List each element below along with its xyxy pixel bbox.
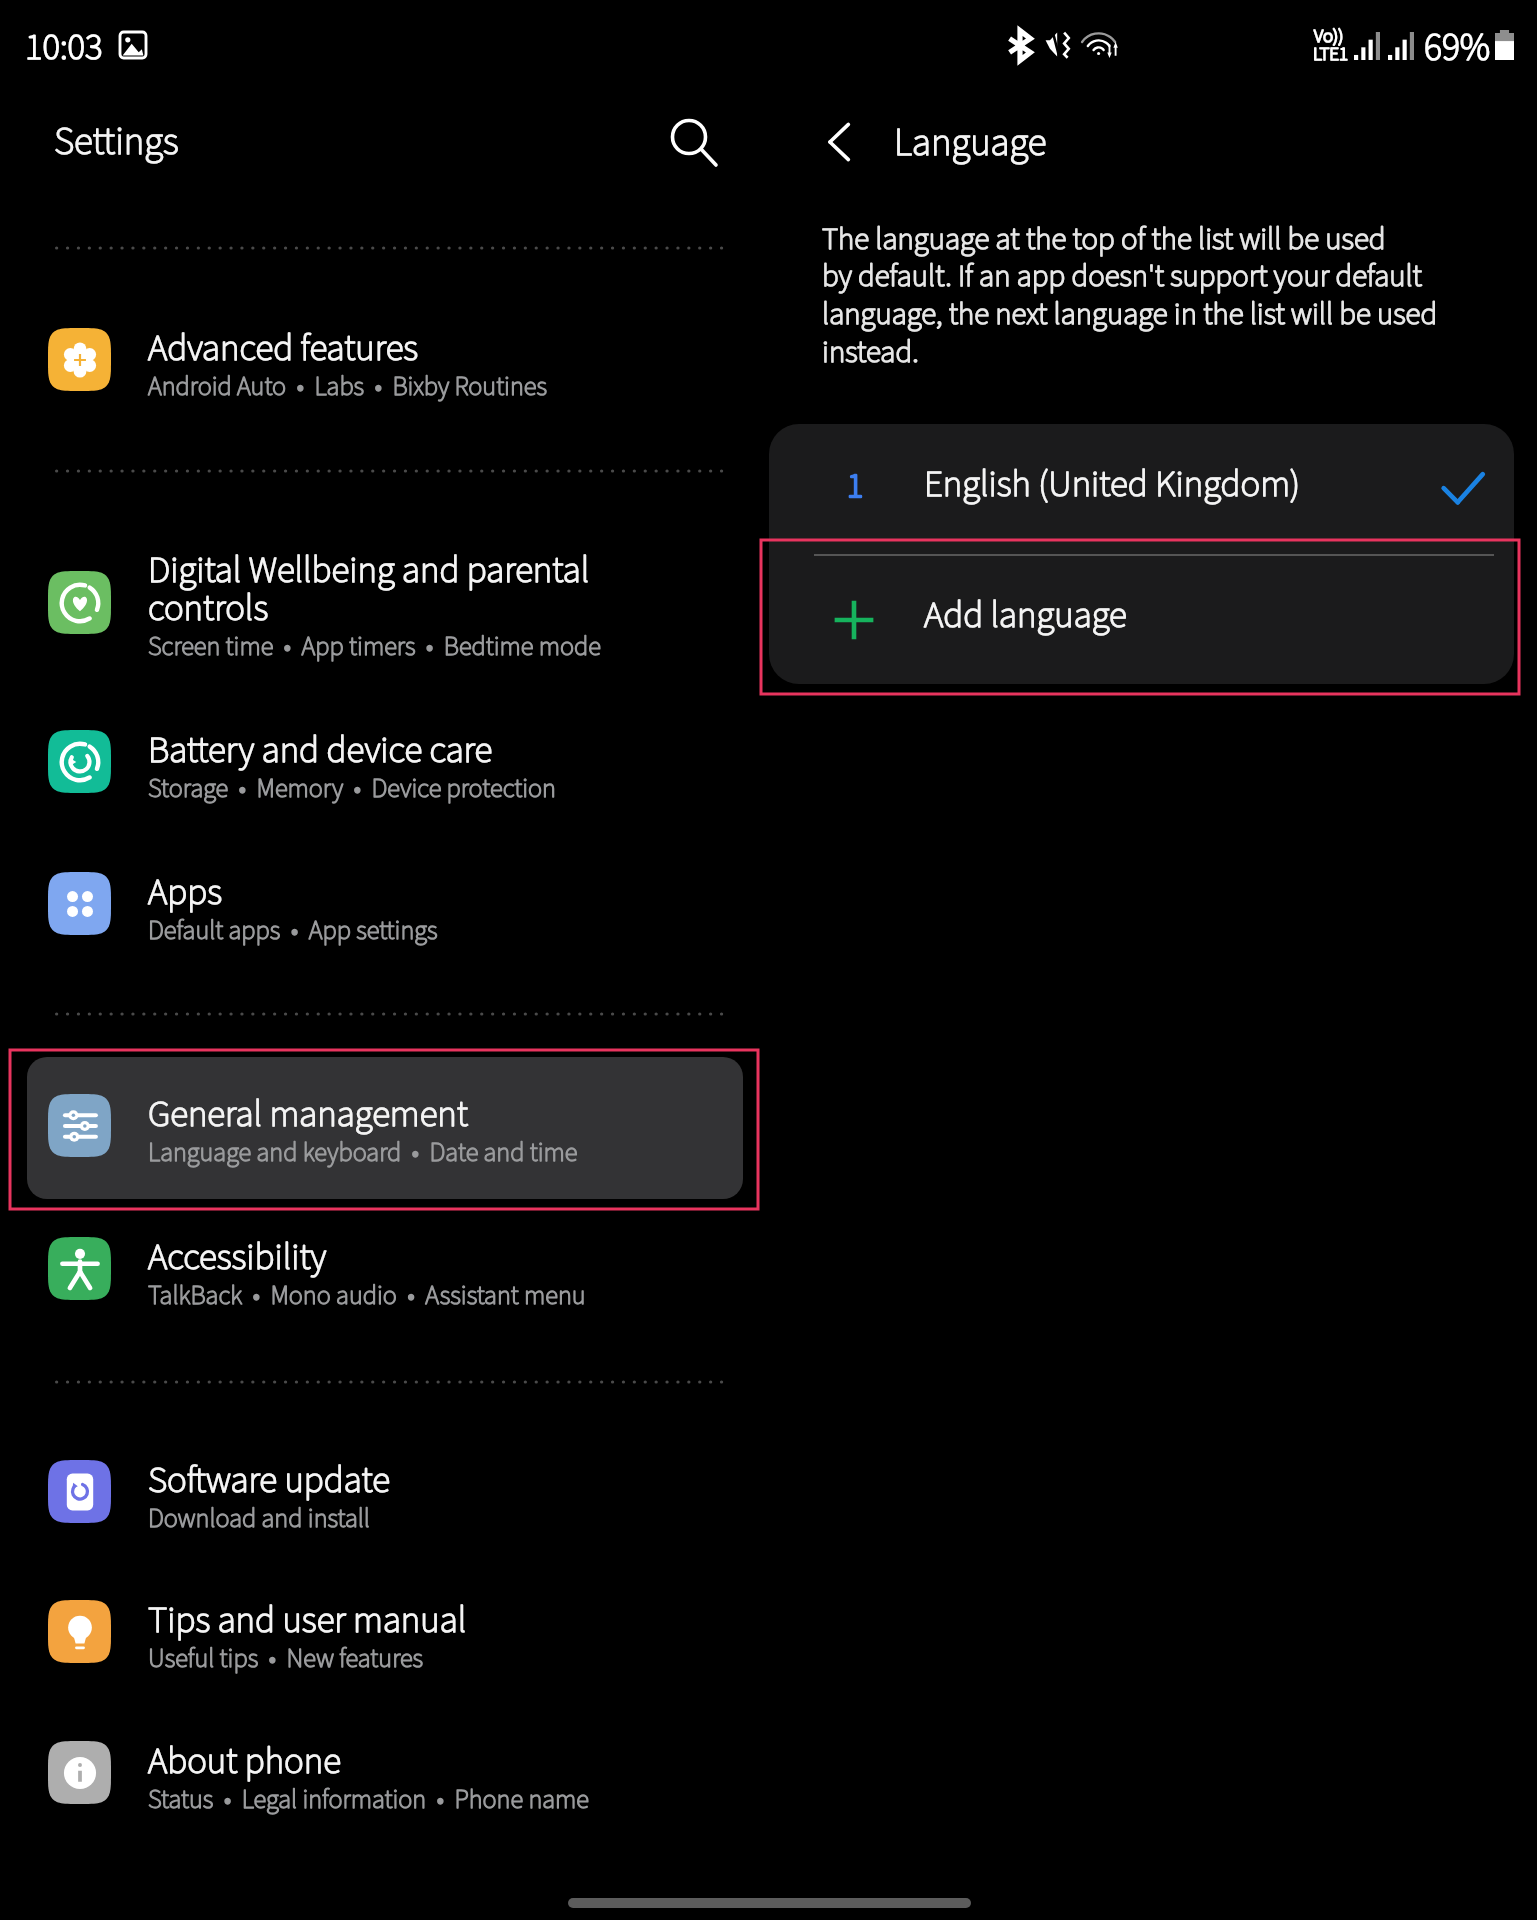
staticText: Advanced features bbox=[148, 322, 419, 375]
staticText: Useful tips • New features bbox=[148, 1640, 424, 1678]
staticText: Digital Wellbeing and parental controls bbox=[148, 544, 590, 635]
staticText: Tips and user manual bbox=[148, 1594, 467, 1647]
staticText: About phone bbox=[148, 1735, 341, 1788]
staticText: Status • Legal information • Phone name bbox=[148, 1781, 589, 1819]
staticText: Battery and device care bbox=[148, 724, 493, 777]
staticText: Language and keyboard • Date and time bbox=[148, 1134, 578, 1172]
staticText: English (United Kingdom) bbox=[924, 458, 1301, 511]
staticText: Settings bbox=[54, 114, 179, 170]
staticText: 10:03 bbox=[25, 21, 103, 74]
staticText: 10:03 bbox=[25, 21, 103, 74]
staticText: Storage • Memory • Device protection bbox=[148, 770, 556, 808]
button[interactable]: 1 bbox=[769, 424, 1514, 554]
staticText: Advanced features bbox=[148, 322, 419, 375]
button[interactable]: Add language bbox=[769, 555, 1514, 684]
staticText: Status • Legal information • Phone name bbox=[148, 1781, 589, 1819]
staticText: The language at the top of the list will… bbox=[822, 217, 1438, 375]
staticText: Useful tips • New features bbox=[148, 1640, 424, 1678]
staticText: Language and keyboard • Date and time bbox=[148, 1134, 578, 1172]
staticText: 1 bbox=[847, 462, 864, 510]
staticText: Android Auto • Labs • Bixby Routines bbox=[148, 368, 548, 406]
staticText: Accessibility bbox=[148, 1231, 327, 1284]
staticText: Accessibility bbox=[148, 1231, 327, 1284]
staticText: Apps bbox=[148, 866, 222, 919]
button[interactable] bbox=[27, 1057, 743, 1199]
button[interactable]: Navigate up bbox=[794, 96, 886, 188]
staticText: Storage • Memory • Device protection bbox=[148, 770, 556, 808]
staticText: Vo)) bbox=[1314, 23, 1344, 50]
staticText: Language bbox=[894, 115, 1047, 171]
staticText: Vo)) bbox=[1314, 23, 1344, 50]
staticText: The language at the top of the list will… bbox=[822, 217, 1438, 375]
staticText: 69% bbox=[1424, 21, 1491, 75]
button[interactable]: Search bbox=[650, 98, 738, 186]
staticText: Add language bbox=[924, 589, 1127, 642]
staticText: LTE1 bbox=[1313, 41, 1348, 68]
staticText: About phone bbox=[148, 1735, 341, 1788]
staticText: TalkBack • Mono audio • Assistant menu bbox=[148, 1277, 586, 1315]
staticText: 1 bbox=[847, 462, 864, 510]
staticText: Default apps • App settings bbox=[148, 912, 438, 950]
staticText: Screen time • App timers • Bedtime mode bbox=[148, 628, 601, 666]
staticText: LTE1 bbox=[1313, 41, 1348, 68]
staticText: Software update bbox=[148, 1454, 390, 1507]
staticText: Screen time • App timers • Bedtime mode bbox=[148, 628, 601, 666]
staticText: 69% bbox=[1424, 21, 1491, 75]
staticText: Add language bbox=[924, 589, 1127, 642]
staticText: Apps bbox=[148, 866, 222, 919]
staticText: Tips and user manual bbox=[148, 1594, 467, 1647]
staticText: Digital Wellbeing and parental controls bbox=[148, 544, 590, 635]
staticText: English (United Kingdom) bbox=[924, 458, 1301, 511]
staticText: Language bbox=[894, 115, 1047, 171]
staticText: Settings bbox=[54, 114, 179, 170]
staticText: General management bbox=[148, 1088, 468, 1141]
staticText: Download and install bbox=[148, 1500, 370, 1538]
staticText: TalkBack • Mono audio • Assistant menu bbox=[148, 1277, 586, 1315]
staticText: Download and install bbox=[148, 1500, 370, 1538]
staticText: Battery and device care bbox=[148, 724, 493, 777]
staticText: Android Auto • Labs • Bixby Routines bbox=[148, 368, 548, 406]
staticText: General management bbox=[148, 1088, 468, 1141]
staticText: Default apps • App settings bbox=[148, 912, 438, 950]
staticText: Software update bbox=[148, 1454, 390, 1507]
